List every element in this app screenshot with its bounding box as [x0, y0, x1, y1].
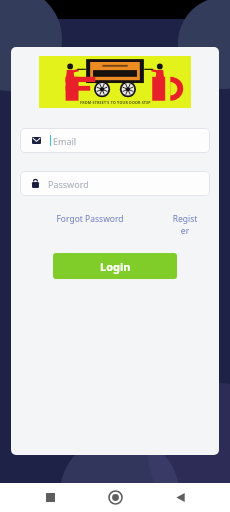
- button[interactable]: Home: [100, 483, 130, 512]
- button[interactable]: Recent apps: [35, 483, 65, 512]
- staticText: Register: [172, 213, 198, 237]
- button[interactable]: Forgot Password: [20, 210, 160, 228]
- staticText: FROM STREET'S TO YOUR DOOR STEP: [80, 100, 151, 105]
- staticText: Login: [100, 259, 131, 274]
- button[interactable]: Register: [160, 210, 210, 240]
- staticText: Forgot Password: [56, 213, 124, 225]
- staticText: Email: [53, 135, 77, 147]
- staticText: Password: [48, 178, 89, 190]
- button[interactable]: Email: [20, 128, 210, 153]
- button[interactable]: Login: [53, 253, 177, 279]
- button[interactable]: Back: [165, 483, 195, 512]
- button[interactable]: Password: [20, 171, 210, 196]
